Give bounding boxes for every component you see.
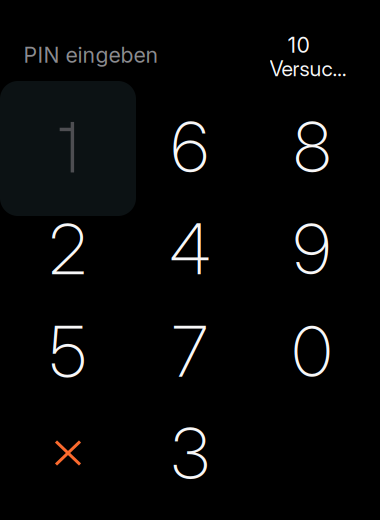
button[interactable]: 8 (251, 96, 373, 197)
staticText: 5 (49, 310, 86, 393)
button[interactable]: 2 (7, 198, 129, 299)
button[interactable]: 5 (7, 301, 129, 402)
button[interactable]: 3 (129, 402, 251, 503)
button[interactable]: 0 (251, 301, 373, 402)
staticText: 3 (171, 411, 209, 495)
staticText: 0 (292, 310, 332, 393)
staticText: 8 (293, 105, 330, 189)
button[interactable]: Löschen (7, 402, 129, 503)
staticText: 6 (171, 105, 209, 189)
staticText: 7 (172, 310, 208, 393)
button[interactable]: 4 (129, 198, 251, 299)
staticText: 10 (287, 32, 309, 58)
button[interactable]: 6 (129, 96, 251, 197)
button[interactable]: 9 (251, 198, 373, 299)
staticText: 2 (49, 207, 87, 291)
staticText: PIN eingeben (23, 42, 158, 68)
staticText: 4 (169, 207, 210, 291)
button[interactable]: 7 (129, 301, 251, 402)
button[interactable]: 1 (6, 97, 128, 198)
staticText: 9 (293, 207, 331, 291)
staticText: Versuc… (269, 56, 346, 81)
